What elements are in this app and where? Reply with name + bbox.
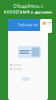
staticText: Рабочий чат xyxy=(18,23,38,27)
staticText: Общайтесь с xyxy=(13,3,43,9)
staticText: КОЛЛЕГАМИ и друзьями xyxy=(3,9,52,15)
